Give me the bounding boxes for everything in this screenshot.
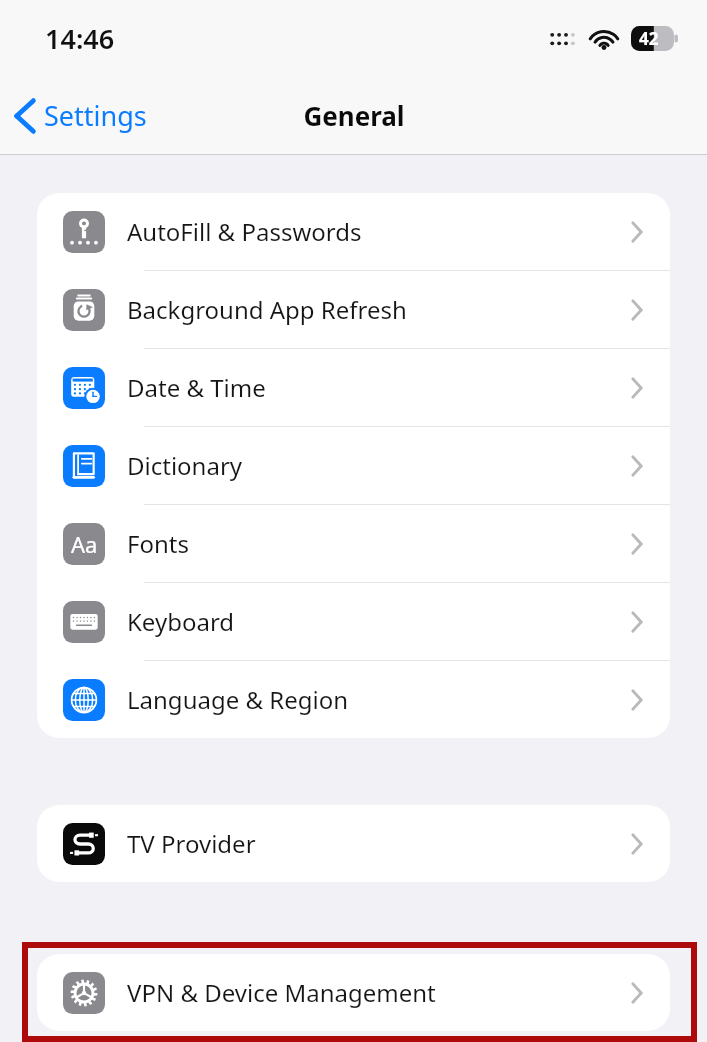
button[interactable]: Language & Region xyxy=(37,661,670,738)
staticText: Keyboard xyxy=(127,605,235,638)
button[interactable]: TV Provider xyxy=(37,805,670,882)
staticText: Settings xyxy=(44,97,147,134)
staticText: VPN & Device Management xyxy=(127,976,436,1009)
staticText: Language & Region xyxy=(127,683,349,716)
other: Back to Settings xyxy=(14,98,36,134)
button[interactable]: AutoFill & Passwords xyxy=(37,193,670,270)
staticText: Fonts xyxy=(127,527,189,560)
staticText: 42 xyxy=(639,27,659,50)
staticText: Background App Refresh xyxy=(127,293,407,326)
button[interactable]: Back to Settings xyxy=(14,97,147,134)
button[interactable]: Background App Refresh xyxy=(37,271,670,348)
button[interactable]: Aa xyxy=(37,505,670,582)
button[interactable]: Keyboard xyxy=(37,583,670,660)
staticText: TV Provider xyxy=(127,827,256,860)
staticText: 14:46 xyxy=(45,20,115,57)
staticText: General xyxy=(303,98,405,133)
staticText: Dictionary xyxy=(127,449,243,482)
button[interactable]: Date & Time xyxy=(37,349,670,426)
staticText: Date & Time xyxy=(127,371,266,404)
staticText: Aa xyxy=(71,529,98,559)
button[interactable]: VPN & Device Management xyxy=(37,954,670,1031)
staticText: AutoFill & Passwords xyxy=(127,215,362,248)
button[interactable]: Dictionary xyxy=(37,427,670,504)
